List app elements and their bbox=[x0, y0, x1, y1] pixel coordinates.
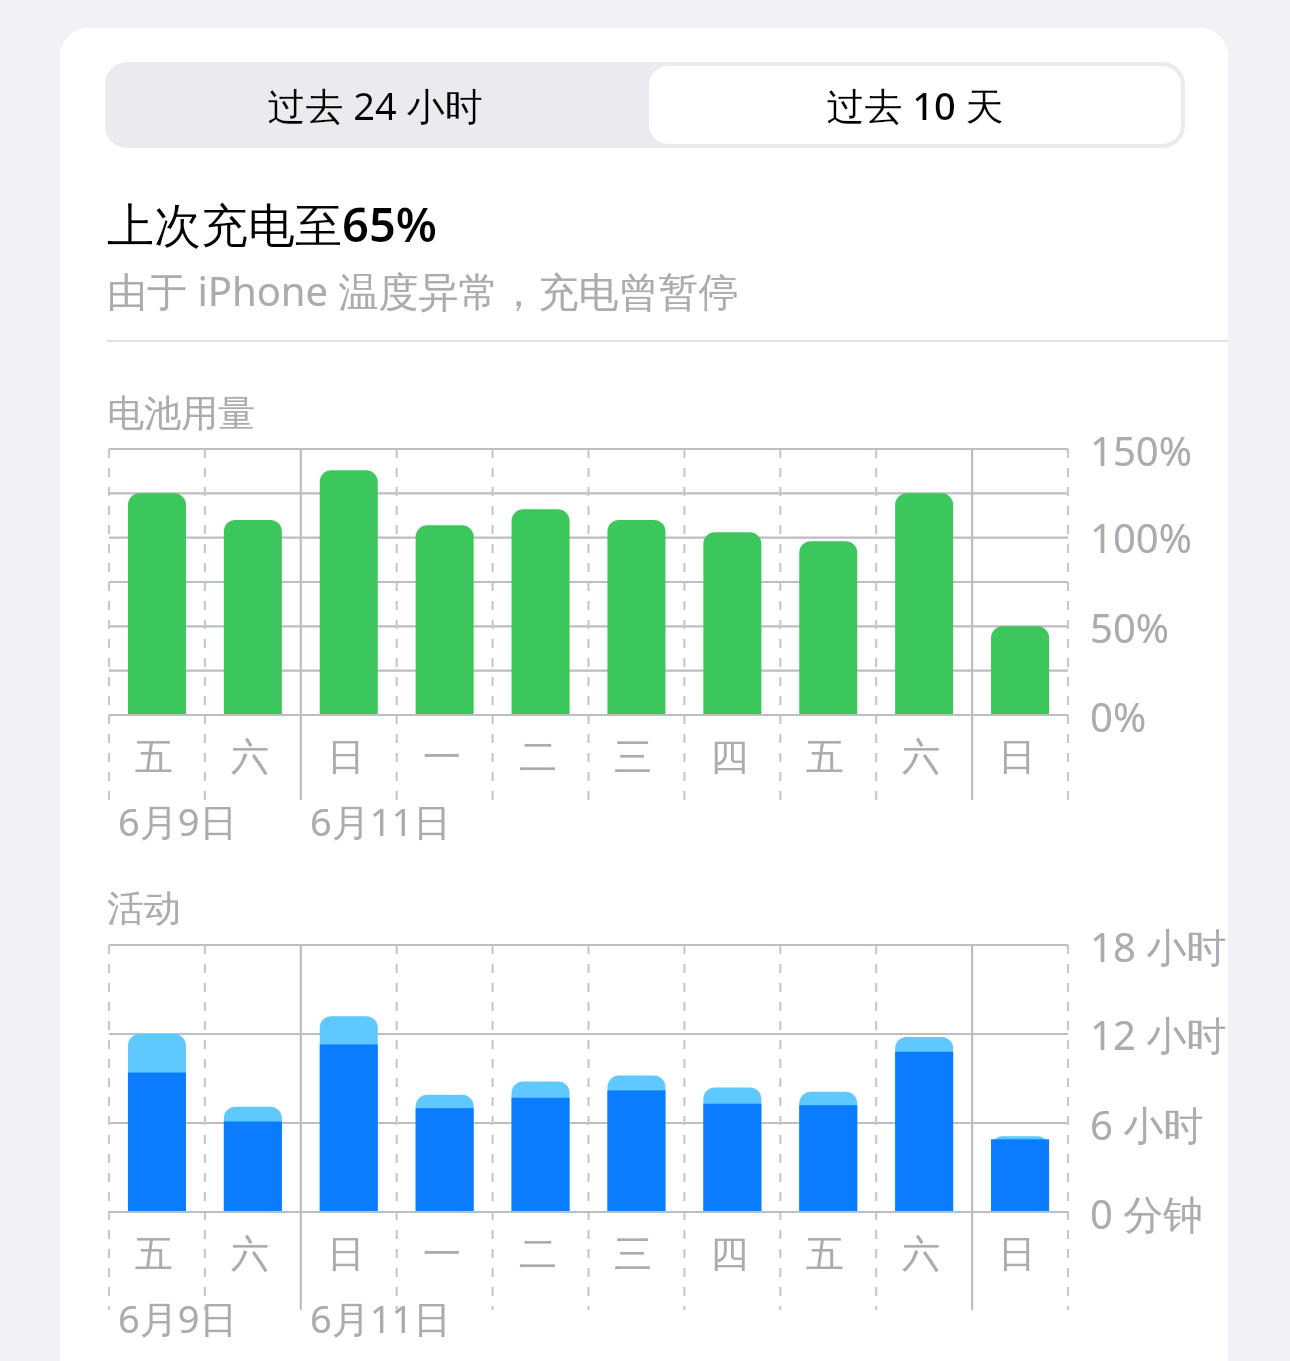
staticText: 一 bbox=[423, 1230, 461, 1278]
button[interactable]: 过去 24 小时 bbox=[105, 62, 645, 148]
staticText: 日 bbox=[327, 1230, 365, 1278]
staticText: 六 bbox=[902, 733, 940, 781]
staticText: 过去 24 小时 bbox=[267, 79, 483, 131]
staticText: 过去 10 天 bbox=[826, 79, 1004, 131]
staticText: 12 小时 bbox=[1090, 1007, 1227, 1062]
staticText: 0 分钟 bbox=[1090, 1186, 1204, 1241]
staticText: 五 bbox=[135, 733, 173, 781]
staticText: 6 小时 bbox=[1090, 1097, 1204, 1152]
staticText: 由于 iPhone 温度异常，充电曾暂停 bbox=[107, 263, 739, 318]
staticText: 日 bbox=[327, 733, 365, 781]
staticText: 上次充电至65% bbox=[107, 192, 437, 256]
staticText: 6月9日 bbox=[118, 1292, 238, 1344]
staticText: 二 bbox=[519, 733, 557, 781]
staticText: 6月11日 bbox=[310, 1292, 452, 1344]
staticText: 18 小时 bbox=[1090, 919, 1227, 974]
staticText: 一 bbox=[423, 733, 461, 781]
staticText: 50% bbox=[1090, 600, 1169, 654]
staticText: 150% bbox=[1090, 423, 1192, 477]
staticText: 日 bbox=[998, 733, 1036, 781]
staticText: 六 bbox=[231, 1230, 269, 1278]
staticText: 6月11日 bbox=[310, 795, 452, 847]
staticText: 四 bbox=[710, 1230, 748, 1278]
staticText: 三 bbox=[614, 733, 652, 781]
staticText: 六 bbox=[231, 733, 269, 781]
staticText: 电池用量 bbox=[107, 390, 255, 437]
staticText: 6月9日 bbox=[118, 795, 238, 847]
staticText: 100% bbox=[1090, 510, 1192, 564]
button[interactable]: 过去 10 天 bbox=[649, 66, 1181, 144]
staticText: 四 bbox=[710, 733, 748, 781]
staticText: 五 bbox=[806, 733, 844, 781]
staticText: 五 bbox=[806, 1230, 844, 1278]
staticText: 三 bbox=[614, 1230, 652, 1278]
staticText: 五 bbox=[135, 1230, 173, 1278]
staticText: 六 bbox=[902, 1230, 940, 1278]
staticText: 二 bbox=[519, 1230, 557, 1278]
staticText: 日 bbox=[998, 1230, 1036, 1278]
staticText: 0% bbox=[1090, 689, 1147, 743]
staticText: 活动 bbox=[107, 885, 181, 932]
